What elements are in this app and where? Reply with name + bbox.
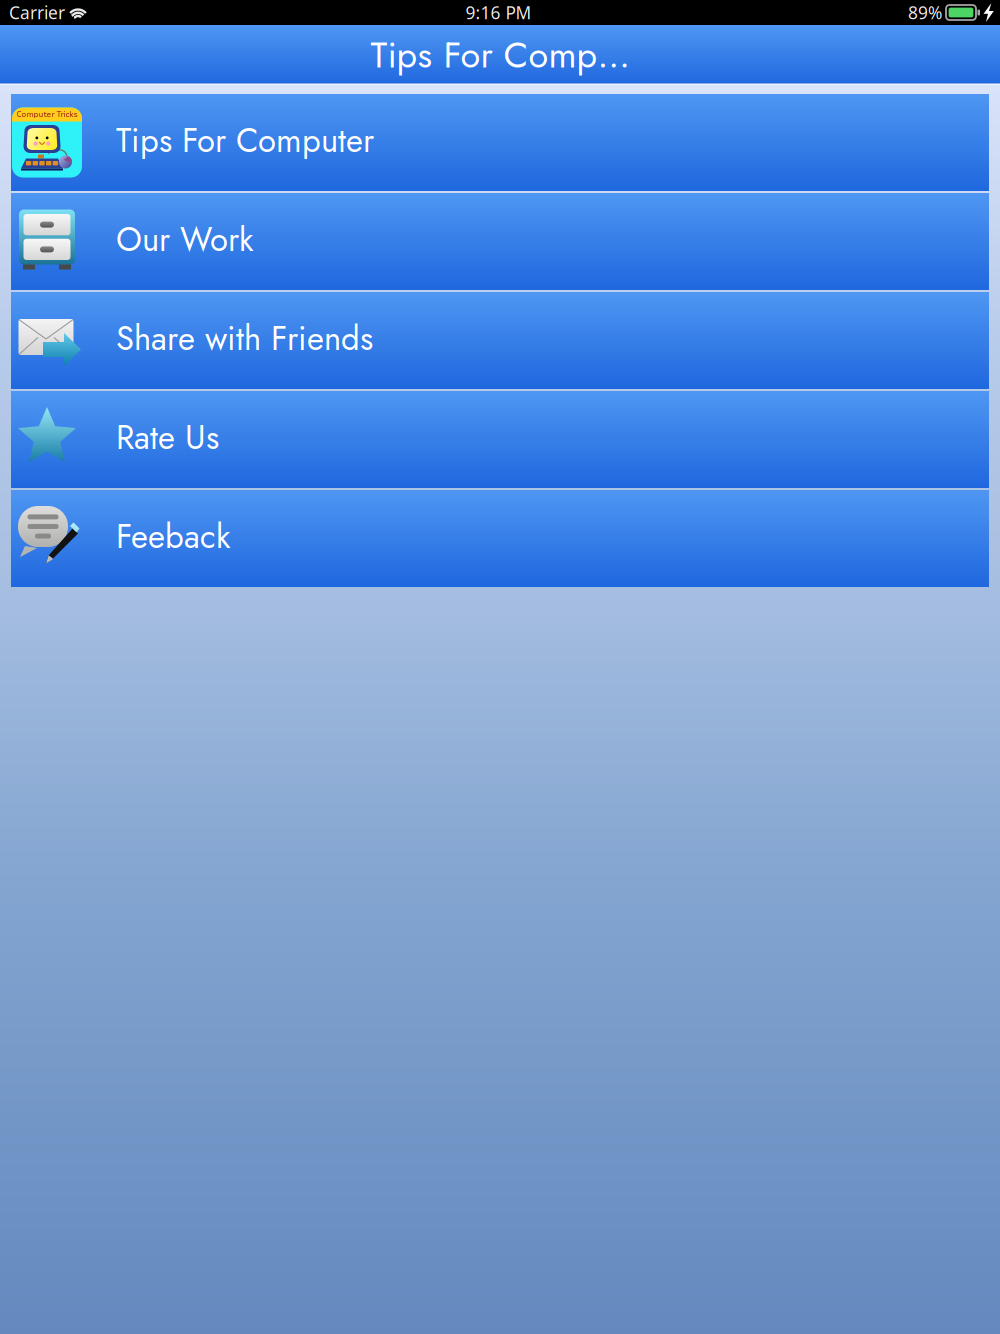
- staticText: Feeback: [116, 513, 230, 560]
- staticText: Our Work: [116, 216, 253, 263]
- staticText: 89%: [908, 1, 942, 24]
- button[interactable]: Rate Us: [11, 391, 989, 488]
- button[interactable]: Our Work: [11, 193, 989, 290]
- button[interactable]: Share with Friends: [11, 292, 989, 389]
- staticText: Tips For Comp…: [370, 29, 629, 81]
- button[interactable]: Feeback: [11, 490, 989, 587]
- staticText: Carrier: [9, 1, 65, 24]
- staticText: Computer Tricks: [16, 109, 77, 120]
- button[interactable]: Computer Tricks: [11, 94, 989, 191]
- staticText: Rate Us: [116, 414, 219, 461]
- staticText: Share with Friends: [116, 315, 373, 362]
- staticText: Tips For Computer: [116, 117, 374, 164]
- staticText: 9:16 PM: [465, 1, 531, 24]
